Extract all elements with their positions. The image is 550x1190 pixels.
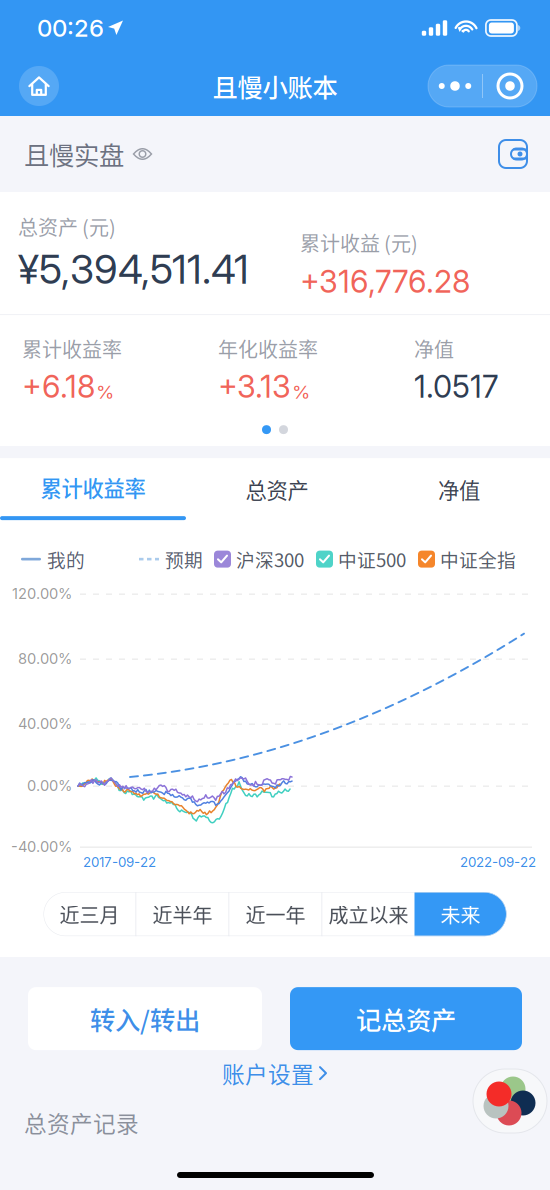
staticText: +6.18 [22,368,95,405]
staticText: % [96,380,114,403]
button[interactable]: 近半年 [136,892,228,936]
staticText: 沪深300 [236,546,304,573]
staticText: 净值 [414,334,454,363]
staticText: 中证500 [338,546,406,573]
button[interactable]: 净值 [368,458,550,520]
staticText: 中证全指 [440,546,516,573]
button[interactable]: 累计收益率 [0,458,186,520]
staticText: 2022-09-22 [460,854,536,870]
staticText: 净值 [438,474,480,505]
staticText: 近一年 [245,900,305,929]
staticText: 记总资产 [356,1000,456,1037]
button[interactable]: 成立以来 [322,892,414,936]
staticText: +3.13 [218,368,291,405]
staticText: 且慢实盘 [24,136,124,172]
button[interactable]: 账户设置 [222,1050,328,1096]
staticText: 预期 [165,546,203,573]
button[interactable]: 沪深300 [214,546,304,573]
staticText: 总资产记录 [24,1106,139,1139]
staticText: % [292,380,310,403]
staticText: 0.00% [27,777,72,794]
button[interactable]: Wallet [498,139,528,169]
button[interactable]: Close [483,65,537,107]
staticText: ¥5,394,511.41 [18,245,249,293]
staticText: 我的 [47,546,85,573]
button[interactable]: 近一年 [229,892,321,936]
button[interactable]: 记总资产 [290,987,522,1050]
staticText: 账户设置 [222,1057,314,1089]
staticText: 成立以来 [328,900,408,929]
staticText: 120.00% [12,585,72,602]
staticText: 近三月 [59,900,119,929]
staticText: 转入/转出 [90,1000,200,1037]
staticText: 2017-09-22 [83,854,156,870]
staticText: 1.0517 [414,368,499,405]
button[interactable]: 中证500 [316,546,406,573]
staticText: 累计收益 (元) [300,228,418,257]
staticText: 80.00% [18,650,72,667]
staticText: 年化收益率 [218,334,318,363]
staticText: 且慢小账本 [212,68,337,104]
button[interactable]: 总资产 [186,458,368,520]
staticText: 近半年 [152,900,212,929]
button[interactable]: 近三月 [43,892,135,936]
button[interactable]: 转入/转出 [28,987,262,1050]
button[interactable]: Home [19,66,59,106]
staticText: 未来 [440,900,480,929]
staticText: 00:26 [37,13,104,42]
button[interactable]: 未来 [414,892,506,936]
button[interactable]: More [428,65,482,107]
staticText: 总资产 (元) [18,212,116,241]
staticText: 累计收益率 [40,472,145,503]
button[interactable]: 中证全指 [418,546,516,573]
staticText: -40.00% [11,838,72,855]
staticText: 总资产 [245,474,308,505]
staticText: 40.00% [18,715,72,732]
staticText: +316,776.28 [300,263,470,300]
staticText: 累计收益率 [22,334,122,363]
